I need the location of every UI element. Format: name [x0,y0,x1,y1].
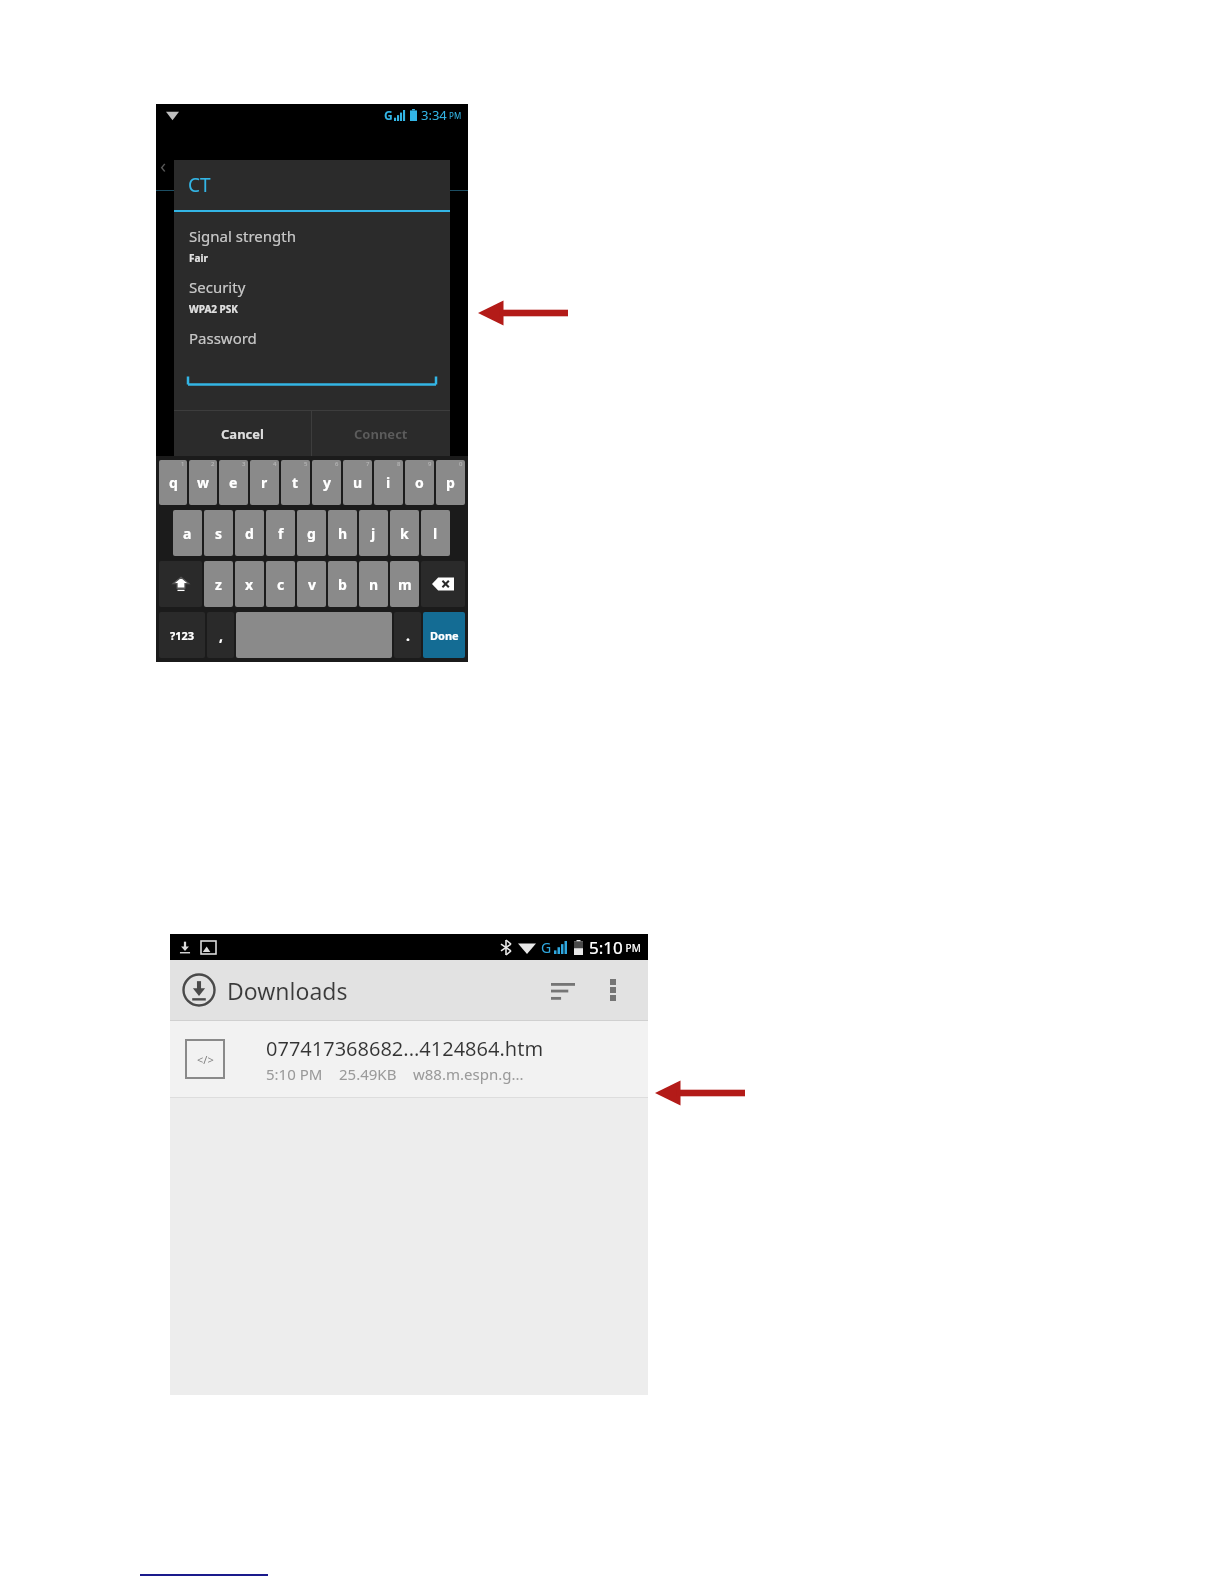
button[interactable]: 5 [281,460,310,505]
button[interactable]: c [266,561,295,607]
staticText: Connect [354,425,408,443]
staticText: Signal strength [189,226,296,246]
button[interactable]: d [235,510,264,556]
button[interactable]: ?123 [159,612,205,658]
staticText: q [169,473,178,492]
staticText: t [292,473,299,492]
button[interactable]: l [421,510,450,556]
staticText: 7 [366,460,370,468]
staticText: i [386,473,391,492]
staticText: 5 [304,460,308,468]
button[interactable]: a [173,510,202,556]
staticText: p [446,473,455,492]
button[interactable]: x [235,561,264,607]
staticText: 5:10 [589,936,623,959]
staticText: Password [189,328,257,348]
staticText: z [215,575,222,594]
button[interactable]: Backspace [421,561,465,607]
staticText: w [197,473,209,492]
staticText: k [400,524,409,543]
button[interactable]: n [359,561,388,607]
staticText: m [398,575,412,594]
staticText: 077417368682...4124864.htm [266,1035,544,1062]
button[interactable]: 9 [405,460,434,505]
staticText: c [277,575,285,594]
staticText: s [215,524,223,543]
button[interactable]: </> [170,1021,648,1097]
button[interactable]: 7 [343,460,372,505]
button[interactable]: , [207,612,234,658]
button[interactable]: Cancel [174,411,311,457]
button[interactable]: z [204,561,233,607]
button[interactable]: 0 [436,460,465,505]
staticText: a [183,524,192,543]
button[interactable]: Shift [159,561,202,607]
staticText: G [541,938,552,957]
other: Download [178,940,192,954]
staticText: v [308,575,316,594]
staticText: 2 [211,460,215,468]
button[interactable]: b [328,561,357,607]
button[interactable]: More options [590,967,636,1013]
button[interactable]: Connect [312,411,450,457]
staticText: Downloads [227,975,348,1006]
button[interactable]: 1 [159,460,187,505]
staticText: ?123 [170,628,195,643]
staticText: WPA2 PSK [189,302,238,316]
button[interactable]: 4 [250,460,279,505]
staticText: j [371,524,376,543]
staticText: d [245,524,254,543]
button[interactable]: Sort [540,967,586,1013]
staticText: b [338,575,347,594]
button[interactable]: . [394,612,421,658]
staticText: n [369,575,379,594]
button[interactable]: v [297,561,326,607]
button[interactable] [188,376,436,386]
staticText: 3 [242,460,246,468]
staticText: o [415,473,424,492]
staticText: 8 [397,460,401,468]
staticText: , [219,626,223,645]
button[interactable]: h [328,510,357,556]
button[interactable]: s [204,510,233,556]
button[interactable]: m [390,561,419,607]
staticText: Fair [189,251,208,265]
staticText: y [323,473,331,492]
staticText: 1 [181,460,185,468]
staticText: r [261,473,268,492]
button[interactable]: g [297,510,326,556]
button[interactable]: 8 [374,460,403,505]
staticText: G [384,107,393,123]
staticText: CT [188,172,211,198]
staticText: h [338,524,348,543]
staticText: w88.m.espn.g... [413,1064,524,1084]
staticText: ‹ [160,152,167,179]
button[interactable]: k [390,510,419,556]
staticText: l [433,524,438,543]
staticText: 0 [459,460,463,468]
staticText: 9 [428,460,432,468]
button[interactable]: 2 [189,460,217,505]
staticText: PM [623,941,641,955]
button[interactable]: 3 [219,460,248,505]
staticText: f [278,524,284,543]
staticText: x [245,575,254,594]
button[interactable]: Done [423,612,465,658]
staticText: u [353,473,363,492]
staticText: 6 [335,460,339,468]
button[interactable]: j [359,510,388,556]
staticText: 5:10 PM [266,1064,323,1084]
staticText: Cancel [221,425,264,443]
staticText: Security [189,277,246,297]
staticText: </> [197,1052,214,1067]
staticText: Done [430,628,459,643]
staticText: PM [447,110,462,121]
staticText: 4 [273,460,277,468]
button[interactable]: 6 [312,460,341,505]
staticText: . [406,626,410,645]
staticText: 3:34 [421,106,447,124]
staticText: g [307,524,316,543]
button[interactable]: f [266,510,295,556]
staticText: e [229,473,238,492]
